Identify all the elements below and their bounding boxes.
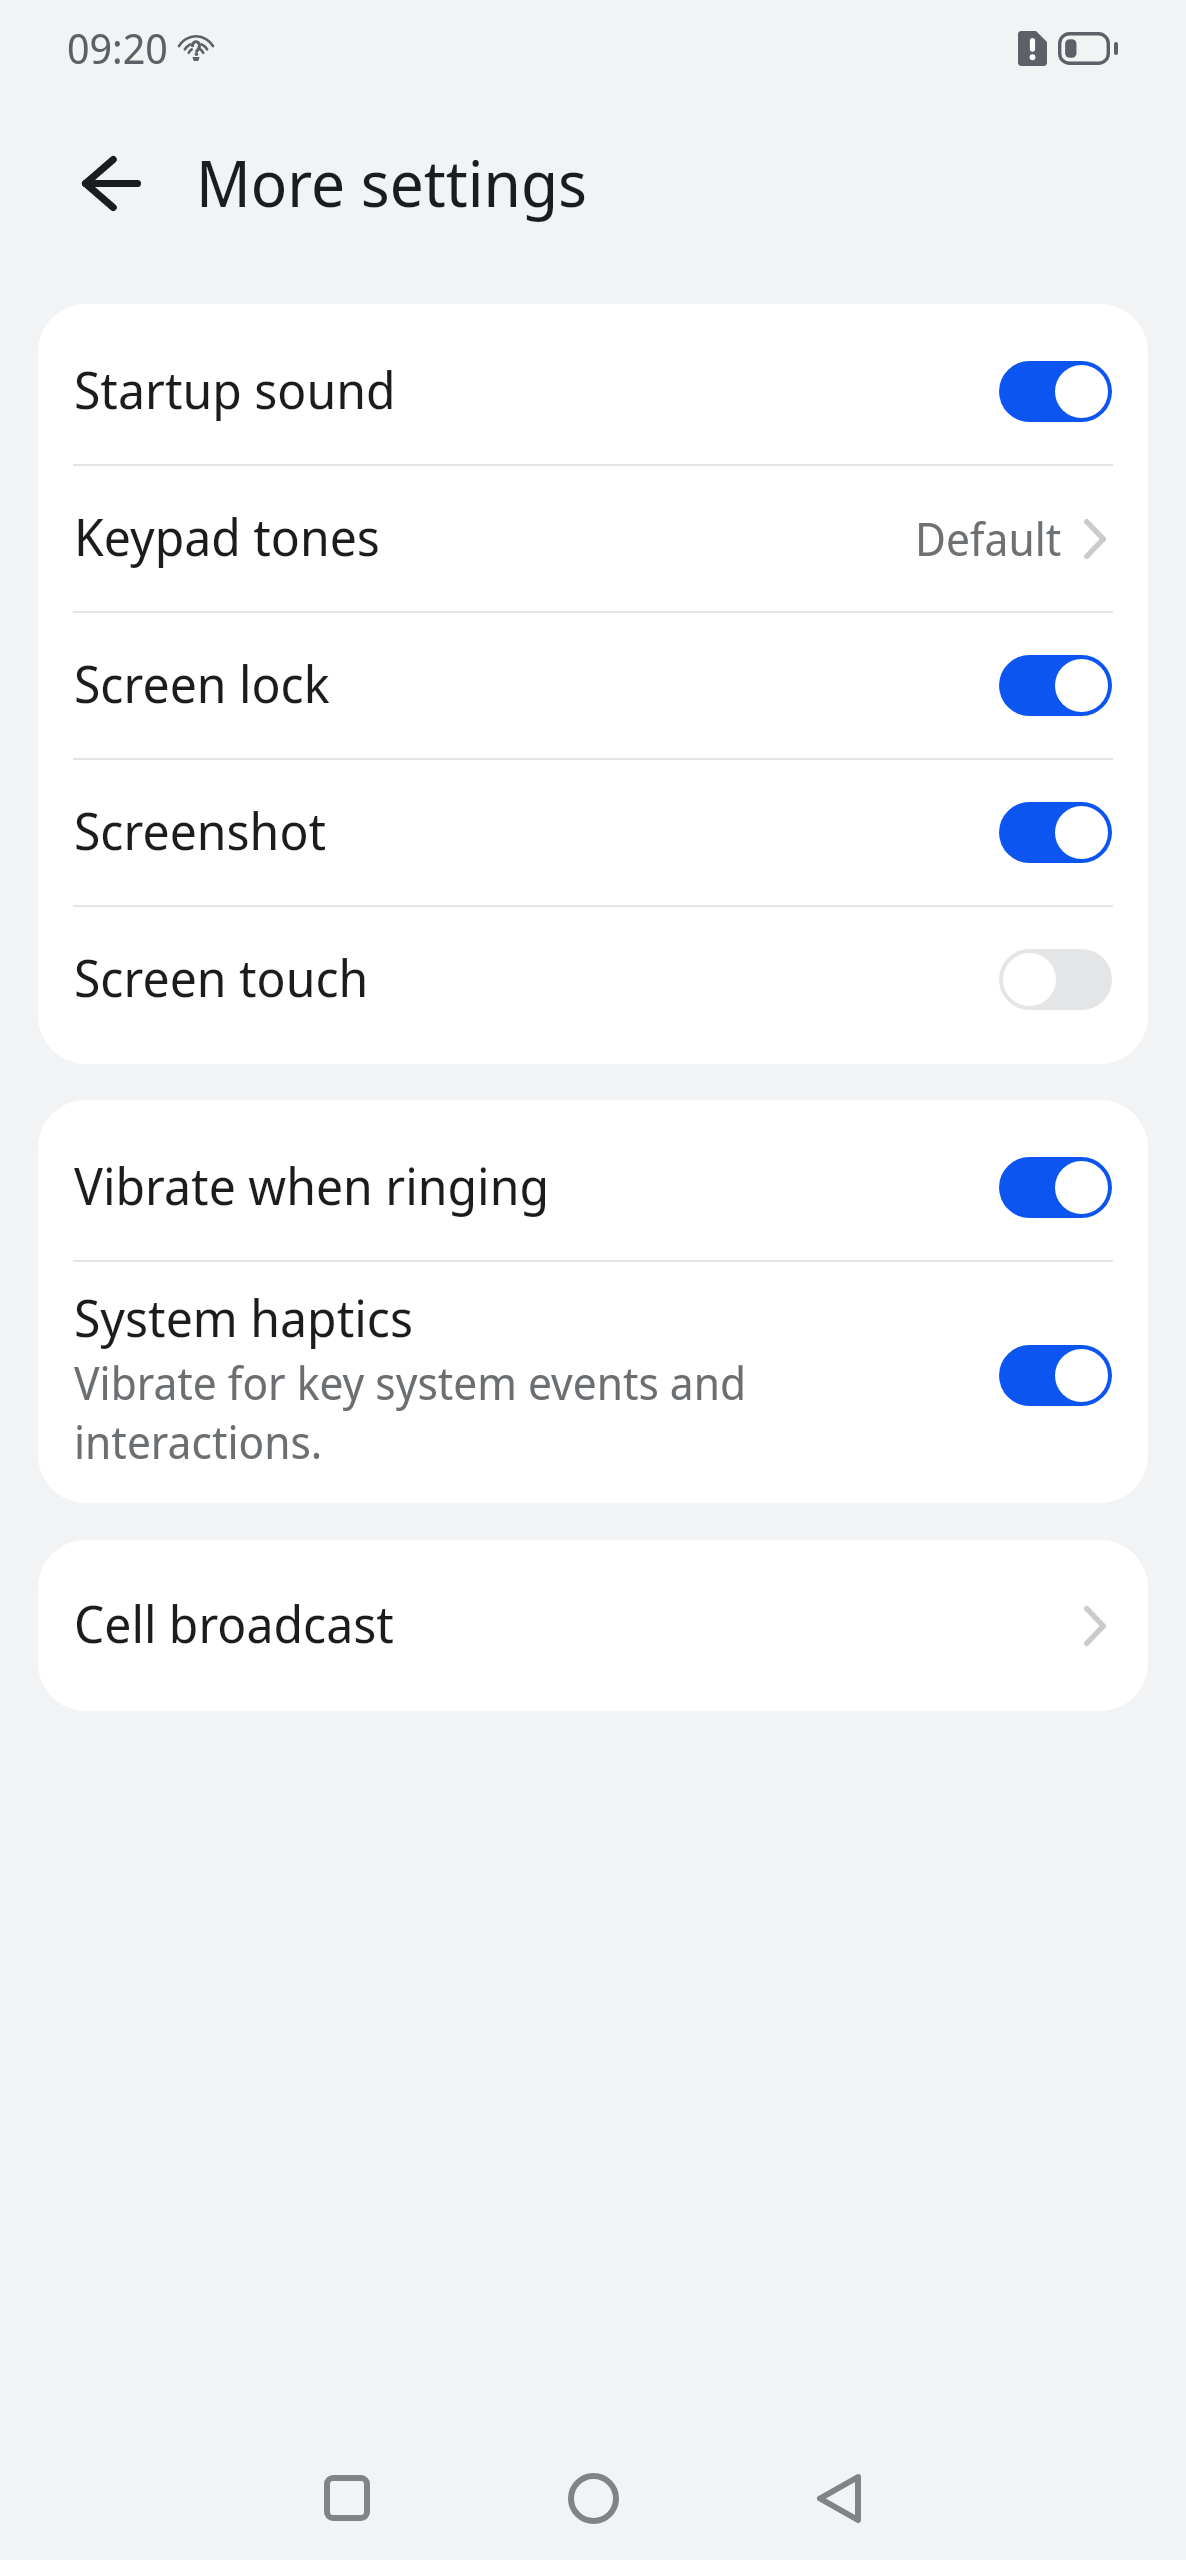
staticText: Vibrate when ringing (74, 1150, 549, 1219)
button[interactable]: Switch on (999, 655, 1112, 716)
button[interactable]: Switch off (999, 949, 1112, 1010)
button[interactable]: Switch on (999, 1157, 1112, 1218)
staticText: More settings (196, 139, 587, 226)
staticText: Keypad tones (74, 501, 380, 570)
button[interactable]: System haptics (38, 1262, 1148, 1489)
staticText: Cell broadcast (74, 1588, 394, 1657)
button[interactable]: Home (468, 2436, 718, 2560)
staticText: System haptics (74, 1282, 413, 1351)
button[interactable]: Screenshot (38, 760, 1148, 905)
button[interactable]: Screen touch (38, 907, 1148, 1052)
staticText: 09:20 (67, 19, 168, 76)
button[interactable]: Vibrate when ringing (38, 1115, 1148, 1260)
staticText: Screenshot (74, 795, 327, 864)
staticText: Vibrate for key system events and intera… (74, 1352, 747, 1472)
button[interactable]: Switch on (999, 361, 1112, 422)
button[interactable]: Back (66, 139, 156, 227)
button[interactable]: Keypad tones (38, 466, 1148, 611)
button[interactable]: Switch on (999, 802, 1112, 863)
button[interactable]: Screen lock (38, 613, 1148, 758)
staticText: Screen touch (74, 942, 369, 1011)
button[interactable]: Cell broadcast (38, 1556, 1148, 1695)
button[interactable]: Switch on (999, 1345, 1112, 1406)
staticText: Screen lock (74, 648, 330, 717)
button[interactable]: Startup sound (38, 319, 1148, 464)
button[interactable]: Recents (222, 2436, 472, 2560)
staticText: Default (915, 508, 1062, 569)
staticText: Startup sound (74, 354, 396, 423)
button[interactable]: Back (714, 2436, 964, 2560)
